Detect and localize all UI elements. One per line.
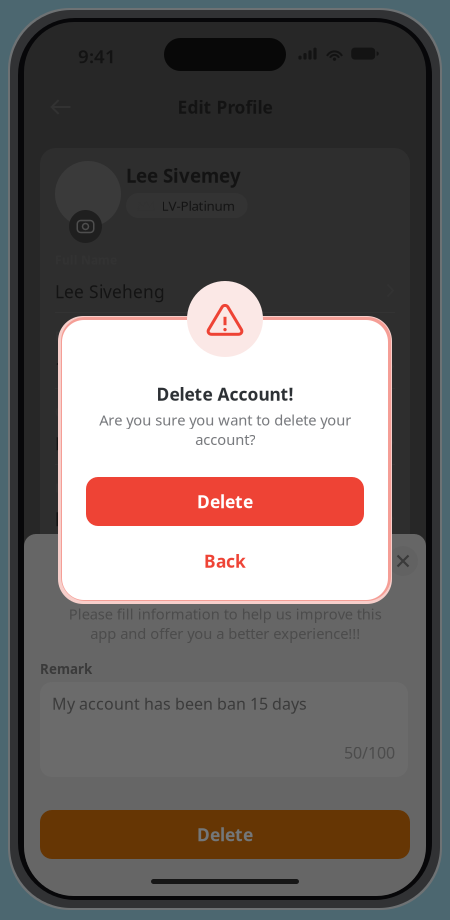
staticText: Back [204,549,246,572]
button[interactable]: Gender [55,402,395,478]
staticText: Delete [197,823,253,846]
staticText: Date of Birth [55,328,132,344]
staticText: Are you sure you want to delete your acc… [99,410,351,449]
button[interactable]: Full Name [55,250,395,326]
staticText: lee@gmail.com [55,508,179,531]
staticText: Delete Account [159,549,291,572]
button[interactable]: Close [388,546,418,576]
staticText: Country [55,556,104,572]
staticText: Edit Profile [177,95,272,118]
staticText: Remark [40,660,92,678]
staticText: Cambodia [55,584,138,607]
button[interactable]: Delete [40,810,410,859]
staticText: 50/100 [344,742,395,763]
staticText: 9:41 [78,44,116,68]
button[interactable]: Email [55,478,395,554]
button[interactable]: Back [86,544,364,578]
button[interactable]: Change profile photo [69,210,102,243]
staticText: Delete [197,490,253,513]
button[interactable]: Delete [86,477,364,526]
staticText: 12 Jan 1996 [55,356,151,379]
staticText: Female [55,432,114,455]
staticText: LV-Platinum [162,197,235,214]
button[interactable]: Country [55,554,395,630]
staticText: My account has been ban 15 days [52,693,307,714]
staticText: Lee Sivemey [126,163,241,188]
staticText: Email [55,480,89,496]
button[interactable]: Date of Birth [55,326,395,402]
staticText: Please fill information to help us impro… [68,604,381,643]
staticText: Delete Account! [156,382,293,405]
staticText: Lee Siveheng [55,280,165,303]
staticText: Gender [55,404,99,420]
